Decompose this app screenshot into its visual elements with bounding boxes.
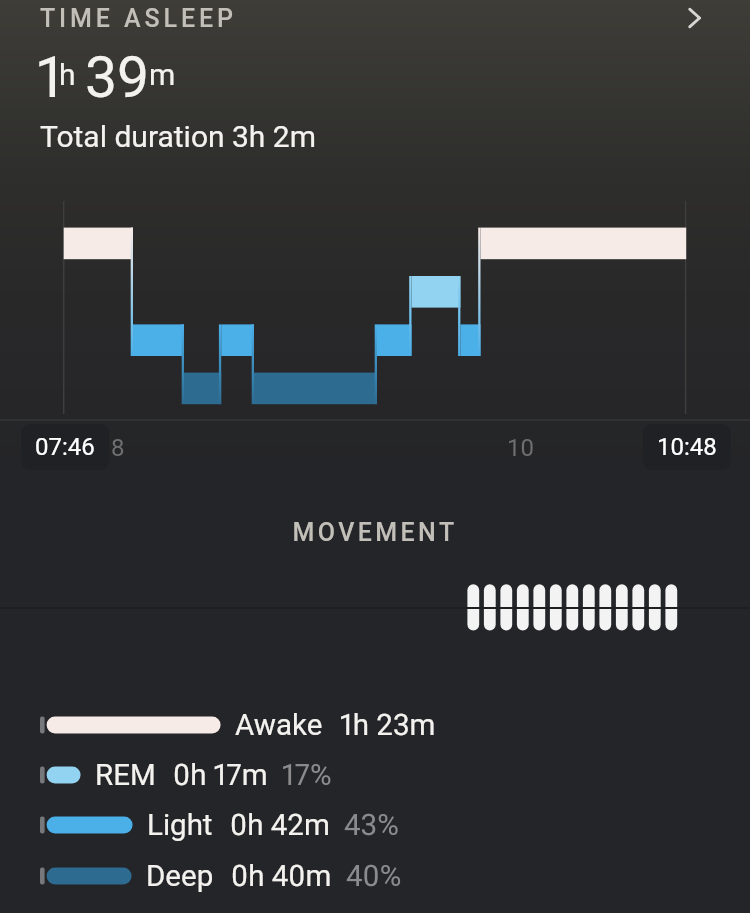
staticText: 39 (85, 44, 150, 111)
staticText: 10:48 (657, 433, 717, 461)
staticText: 0h 17m (173, 758, 268, 793)
button[interactable]: TIME ASLEEP (0, 0, 750, 175)
staticText: 1 (37, 44, 62, 111)
staticText: 40% (346, 859, 402, 894)
button[interactable]: Open sleep details (676, 0, 712, 36)
staticText: Awake (235, 708, 323, 743)
button[interactable]: Awake (0, 700, 750, 750)
staticText: Total duration 3h 2m (40, 119, 317, 154)
staticText: h (59, 57, 76, 92)
staticText: Deep (146, 859, 214, 894)
button[interactable]: Light (0, 800, 750, 850)
staticText: m (149, 57, 176, 92)
staticText: 10 (507, 434, 534, 462)
staticText: REM (95, 758, 156, 793)
staticText: TIME ASLEEP (40, 4, 237, 33)
staticText: Light (147, 808, 213, 843)
staticText: 1h 23m (340, 708, 436, 743)
staticText: MOVEMENT (0, 518, 750, 547)
staticText: 0h 40m (231, 859, 332, 894)
staticText: 0h 42m (230, 808, 330, 843)
button[interactable]: Deep (0, 851, 750, 901)
staticText: 43% (344, 808, 399, 843)
staticText: 07:46 (35, 433, 95, 461)
button[interactable]: REM (0, 750, 750, 800)
staticText: 8 (111, 434, 125, 462)
staticText: 17% (282, 758, 332, 793)
